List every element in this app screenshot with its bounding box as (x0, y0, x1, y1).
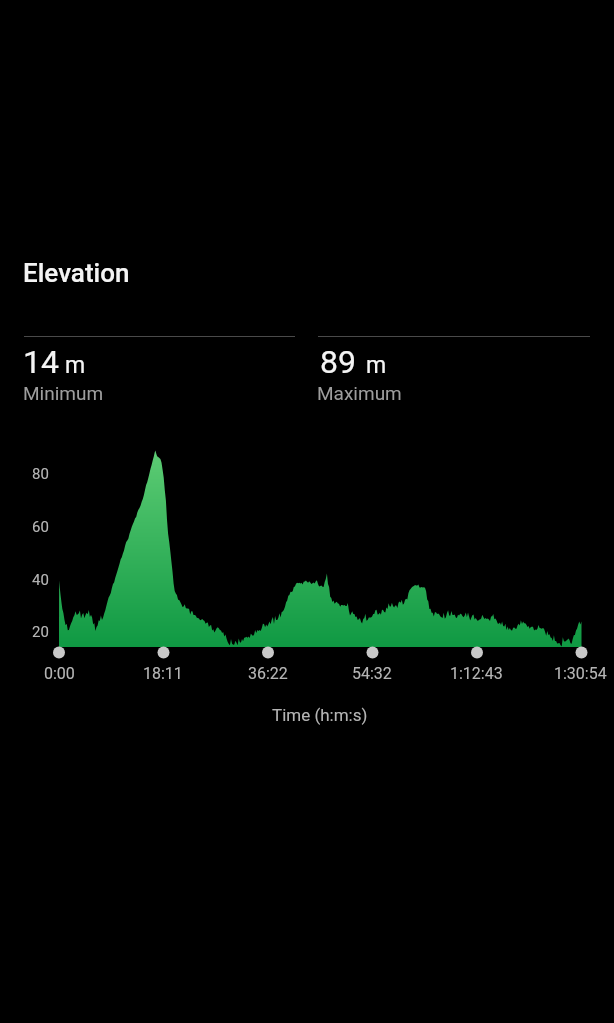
staticText: m (65, 352, 86, 379)
staticText: Maximum (317, 382, 402, 404)
button[interactable]: 14 (24, 336, 295, 403)
staticText: 40 (32, 571, 49, 589)
staticText: 1:12:43 (450, 664, 503, 683)
staticText: 89 (320, 343, 356, 381)
staticText: Elevation (23, 258, 130, 288)
staticText: 60 (32, 518, 49, 536)
staticText: 20 (32, 623, 49, 641)
staticText: 80 (32, 465, 49, 483)
button[interactable]: Elevation over time chart (24, 440, 590, 665)
staticText: 54:32 (352, 664, 392, 683)
staticText: 1:30:54 (554, 664, 607, 683)
staticText: Minimum (23, 382, 104, 404)
staticText: 18:11 (143, 664, 183, 683)
staticText: m (366, 352, 387, 379)
staticText: 14 (23, 343, 59, 381)
staticText: Time (h:m:s) (272, 705, 368, 725)
staticText: 0:00 (44, 664, 75, 683)
button[interactable]: 89 (318, 336, 590, 403)
staticText: 36:22 (248, 664, 288, 683)
